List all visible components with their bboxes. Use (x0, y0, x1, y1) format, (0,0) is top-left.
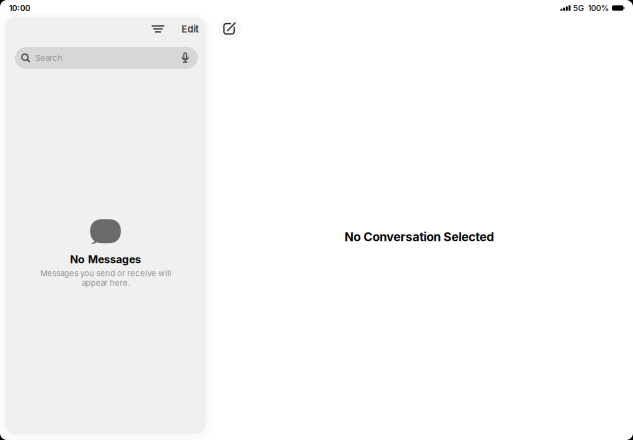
button[interactable]: Filter (141, 20, 175, 38)
staticText: No Conversation Selected (344, 230, 494, 244)
staticText: Search (35, 53, 62, 63)
staticText: 10:00 (9, 3, 30, 13)
staticText: No Messages (70, 253, 141, 266)
button[interactable]: Compose (218, 17, 241, 40)
staticText: 100% (588, 3, 609, 13)
staticText: 5G (573, 3, 584, 13)
staticText: Messages you send or receive will appear… (40, 269, 171, 287)
staticText: Edit (181, 23, 198, 34)
button[interactable]: Edit (175, 20, 205, 38)
